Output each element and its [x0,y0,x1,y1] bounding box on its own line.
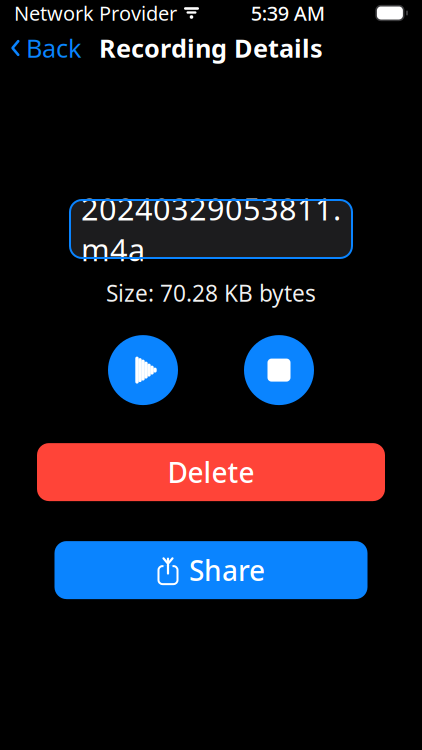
button[interactable]: Delete [37,443,385,501]
staticText: Recording Details [99,31,323,65]
staticText: Back [26,31,82,65]
button[interactable]: 20240329053811.m4a [70,200,352,258]
staticText: Share [189,551,265,589]
staticText: Size: 70.28 KB bytes [106,278,316,308]
staticText: Delete [167,453,254,491]
staticText: 20240329053811.m4a [81,188,341,270]
button[interactable]: Share [54,541,367,599]
button[interactable]: Play [108,335,178,405]
button[interactable]: Stop [244,335,314,405]
button[interactable]: Back [0,25,92,71]
staticText: 5:39 AM [251,0,325,26]
staticText: Network Provider [14,0,177,26]
